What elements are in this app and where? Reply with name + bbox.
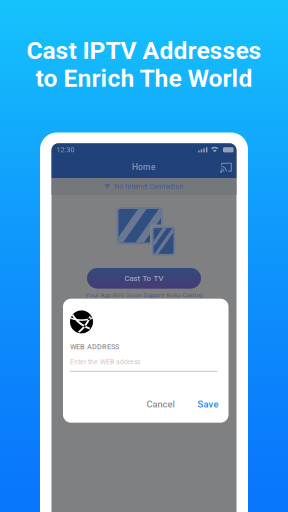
staticText: 12:30 bbox=[56, 146, 74, 154]
staticText: Your App Will Soon Support Roku Casting bbox=[85, 291, 202, 299]
staticText: Home bbox=[132, 162, 156, 172]
staticText: Cast IPTV Addresses bbox=[26, 36, 261, 65]
staticText: Enter the WEB address bbox=[70, 358, 140, 366]
staticText: Cancel bbox=[146, 399, 174, 410]
staticText: No Internet Connection bbox=[115, 183, 184, 190]
staticText: Cast To TV bbox=[124, 274, 163, 283]
staticText: Save bbox=[197, 399, 218, 410]
staticText: WEB ADDRESS bbox=[70, 342, 119, 351]
button[interactable]: Cast to device bbox=[219, 161, 233, 173]
button[interactable]: Cancel bbox=[143, 397, 177, 412]
button[interactable]: Cast To TV bbox=[87, 268, 201, 288]
button[interactable]: Save bbox=[194, 397, 221, 412]
staticText: to Enrich The World bbox=[35, 64, 252, 93]
